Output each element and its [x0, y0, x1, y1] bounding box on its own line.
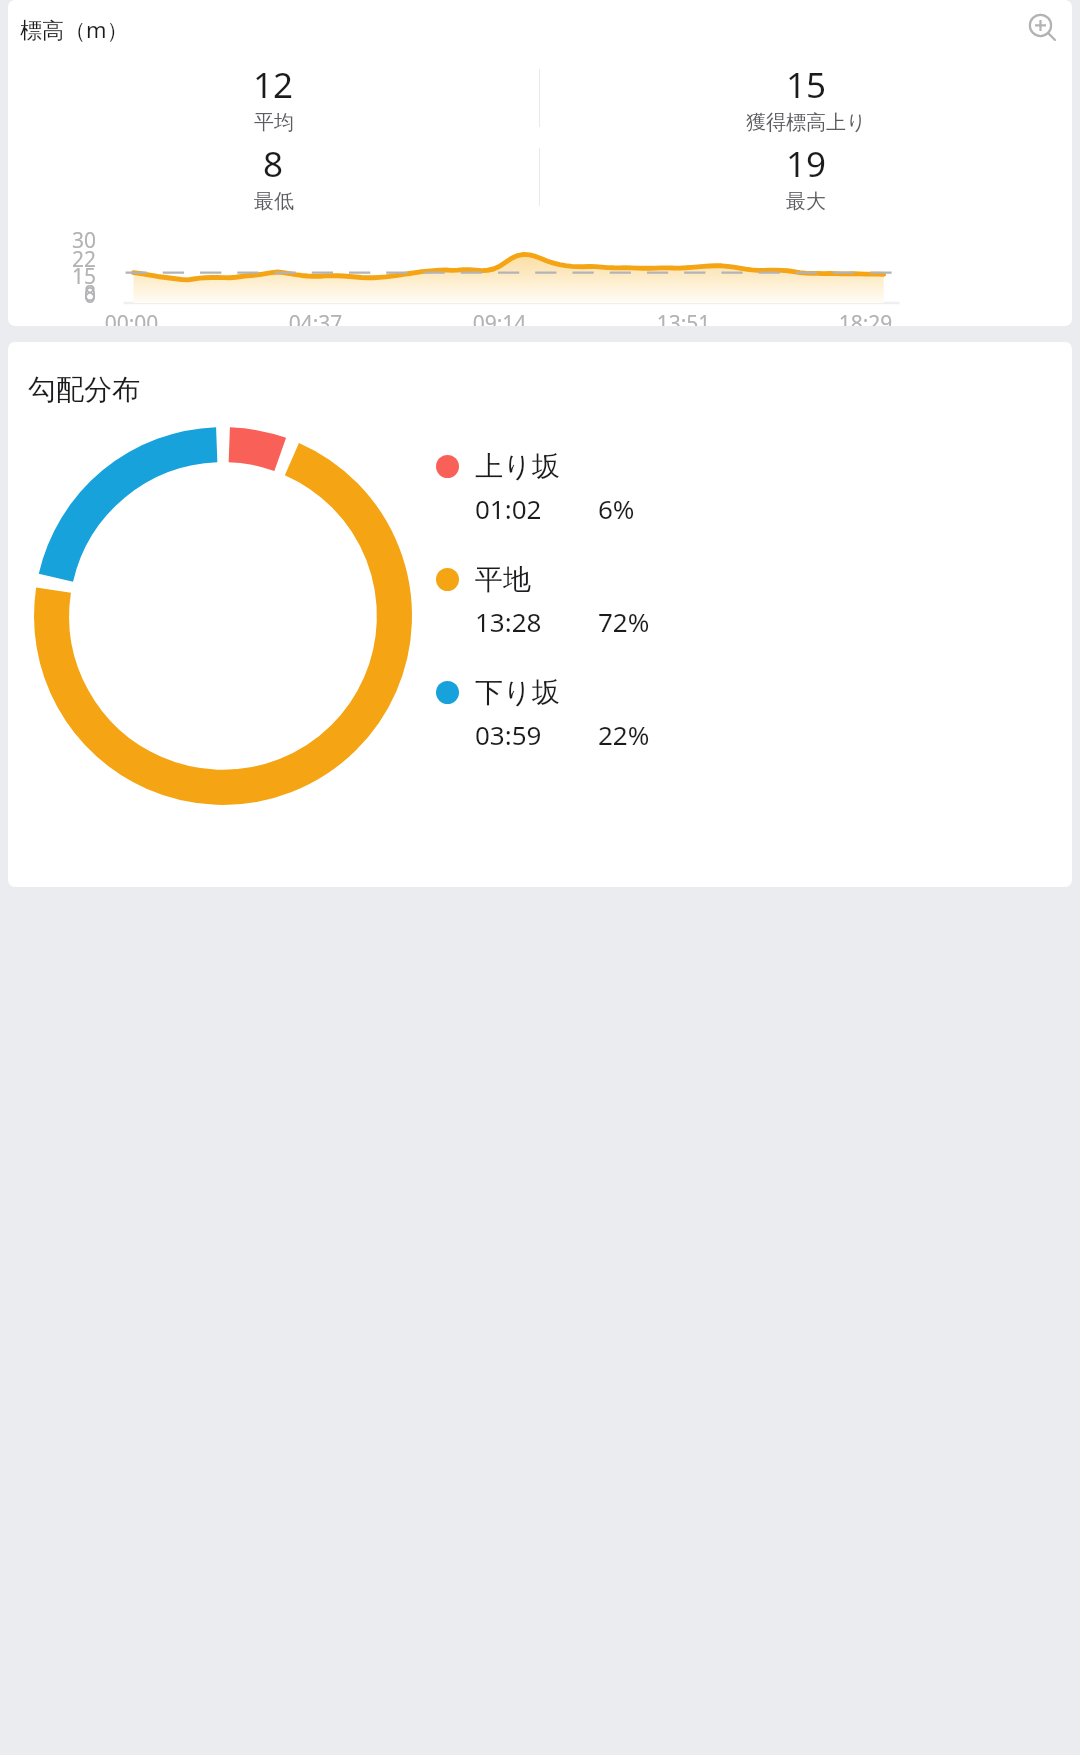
- staticText: 09:14: [376, 309, 623, 326]
- staticText: 04:37: [192, 309, 439, 326]
- staticText: 30: [8, 226, 96, 255]
- staticText: 上り坂: [475, 449, 560, 484]
- staticText: 03:59: [475, 717, 542, 752]
- staticText: 平地: [475, 562, 531, 597]
- staticText: 0: [8, 281, 96, 310]
- staticText: 18:29: [742, 309, 989, 326]
- staticText: 13:28: [475, 604, 542, 639]
- staticText: 15: [8, 262, 96, 291]
- staticText: 標高（m）: [20, 14, 129, 44]
- button[interactable]: 平地: [436, 562, 1072, 639]
- button[interactable]: Zoom in: [1022, 8, 1064, 50]
- staticText: 19: [786, 140, 827, 188]
- staticText: 獲得標高上り: [746, 110, 867, 135]
- staticText: 72%: [598, 604, 650, 639]
- staticText: 最大: [786, 189, 826, 214]
- button[interactable]: 上り坂: [436, 449, 1072, 526]
- staticText: 01:02: [475, 491, 542, 526]
- staticText: 下り坂: [475, 675, 560, 710]
- staticText: 15: [786, 61, 827, 109]
- button[interactable]: 下り坂: [436, 675, 1072, 752]
- staticText: 8: [8, 279, 96, 308]
- staticText: 12: [253, 61, 294, 109]
- staticText: 22%: [598, 717, 650, 752]
- staticText: 8: [263, 140, 284, 188]
- staticText: 平均: [254, 110, 294, 135]
- staticText: 13:51: [560, 309, 807, 326]
- staticText: 6%: [598, 491, 635, 526]
- staticText: 22: [8, 245, 96, 274]
- staticText: 最低: [254, 189, 294, 214]
- staticText: 勾配分布: [28, 372, 140, 407]
- staticText: 00:00: [8, 309, 255, 326]
